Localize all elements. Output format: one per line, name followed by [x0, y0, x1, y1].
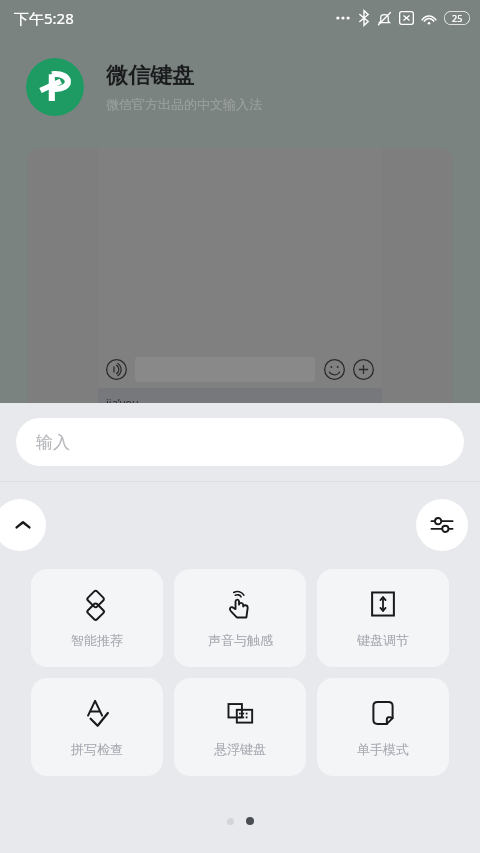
button[interactable]: 键盘调节 — [317, 569, 449, 667]
staticText: 下午5:28 — [14, 8, 74, 28]
staticText: 声音与触感 — [208, 632, 273, 648]
staticText: jia’you — [106, 395, 139, 410]
button[interactable]: 声音与触感 — [174, 569, 306, 667]
button[interactable]: 输入 — [16, 418, 464, 466]
button[interactable]: Collapse — [0, 499, 46, 551]
button[interactable]: 智能推荐 — [31, 569, 163, 667]
button[interactable]: 悬浮键盘 — [174, 678, 306, 776]
button[interactable]: 单手模式 — [317, 678, 449, 776]
staticText: 悬浮键盘 — [214, 741, 266, 757]
button[interactable]: Settings — [416, 499, 468, 551]
staticText: 键盘调节 — [357, 632, 409, 648]
staticText: 微信官方出品的中文输入法 — [106, 96, 262, 112]
staticText: 输入 — [36, 432, 70, 453]
staticText: 拼写检查 — [71, 741, 123, 757]
staticText: 单手模式 — [357, 741, 409, 757]
staticText: 25 — [452, 12, 463, 24]
staticText: 智能推荐 — [71, 632, 123, 648]
staticText: 微信键盘 — [106, 62, 194, 90]
button[interactable]: 拼写检查 — [31, 678, 163, 776]
